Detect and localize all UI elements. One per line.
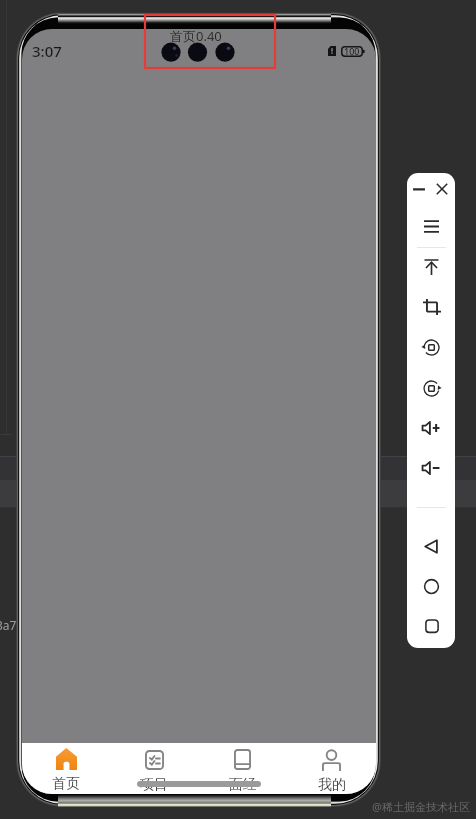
staticText: 面经	[229, 776, 257, 794]
button[interactable]: Volume up	[417, 416, 445, 440]
button[interactable]: 我的	[287, 743, 376, 794]
button[interactable]: Close	[428, 175, 455, 203]
button[interactable]: Screenshot	[418, 294, 446, 320]
button[interactable]: Back	[419, 534, 444, 559]
button[interactable]: Volume down	[417, 456, 445, 480]
staticText: @稀土掘金技术社区	[372, 799, 470, 814]
button[interactable]: Recents	[420, 614, 444, 638]
staticText: 项目	[140, 776, 168, 794]
button[interactable]: 面经	[198, 743, 287, 794]
button[interactable]: 首页	[22, 743, 110, 794]
button[interactable]: Home	[419, 574, 444, 599]
button[interactable]: Minimize	[407, 175, 433, 203]
staticText: 3a7	[0, 617, 17, 633]
staticText: 我的	[318, 776, 346, 794]
staticText: 首页	[52, 775, 80, 793]
button[interactable]: Menu	[419, 215, 444, 238]
staticText: 3:07	[32, 41, 62, 61]
staticText: 100	[344, 45, 360, 57]
button[interactable]: 项目	[110, 743, 198, 794]
button[interactable]: Rotate left	[418, 334, 445, 361]
staticText: 首页0.40	[170, 27, 222, 45]
button[interactable]: Rotate right	[418, 375, 445, 402]
button[interactable]: Wake up	[419, 254, 444, 280]
